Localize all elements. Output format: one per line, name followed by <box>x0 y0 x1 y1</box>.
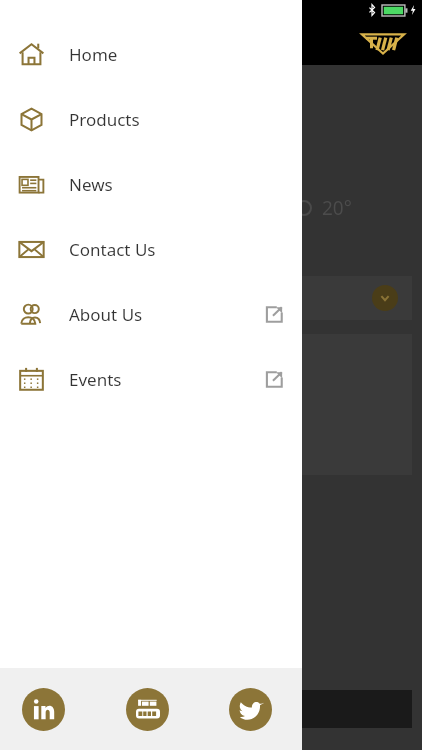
staticText: 20° <box>322 195 352 221</box>
button[interactable]: About Us <box>0 282 302 347</box>
button[interactable]: Twitter <box>229 688 272 731</box>
button[interactable]: Products <box>0 87 302 152</box>
button[interactable]: LinkedIn <box>22 688 65 731</box>
staticText: News <box>69 173 113 196</box>
button[interactable]: Events <box>0 347 302 412</box>
button[interactable]: YouTube <box>126 688 169 731</box>
staticText: Home <box>69 43 118 66</box>
button[interactable]: Home <box>0 22 302 87</box>
button[interactable]: Expand <box>372 285 398 311</box>
staticText: SHARE <box>185 698 238 721</box>
button[interactable]: SHARE <box>10 690 412 728</box>
button[interactable]: News <box>0 152 302 217</box>
button[interactable]: Contact Us <box>0 217 302 282</box>
other: Logo <box>360 31 406 55</box>
staticText: Contact Us <box>69 238 156 261</box>
staticText: Events <box>69 368 122 391</box>
staticText: Products <box>69 108 140 131</box>
staticText: About Us <box>69 303 143 326</box>
